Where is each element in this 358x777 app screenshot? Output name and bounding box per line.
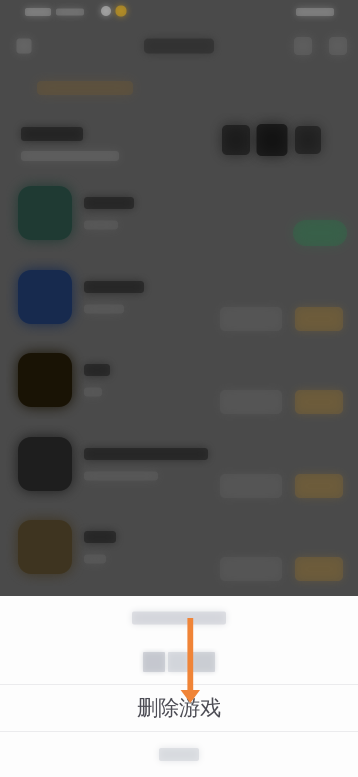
button[interactable]: Update game [291, 385, 347, 419]
button[interactable]: Cancel [0, 732, 358, 777]
button[interactable]: 删除游戏 [0, 685, 358, 731]
button[interactable]: More [319, 26, 357, 66]
button[interactable]: Update game [291, 302, 347, 336]
button[interactable]: Search [283, 26, 323, 66]
button[interactable]: Game details [216, 302, 286, 336]
button[interactable]: Package name [0, 640, 358, 684]
staticText: 删除游戏 [137, 695, 221, 721]
button[interactable]: Game details [216, 385, 286, 419]
button[interactable]: Update game [291, 552, 347, 586]
button[interactable]: Game details [216, 552, 286, 586]
button[interactable]: Back [2, 26, 46, 66]
button[interactable]: Game details [216, 469, 286, 503]
button[interactable]: Open game [288, 215, 352, 251]
button[interactable]: Update game [291, 469, 347, 503]
button[interactable]: Game title [0, 596, 358, 640]
